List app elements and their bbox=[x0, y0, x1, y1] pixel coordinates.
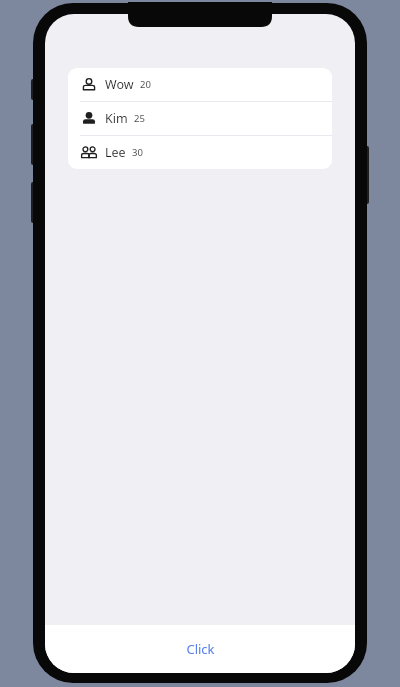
staticText: Wow bbox=[105, 76, 134, 93]
staticText: Kim bbox=[105, 110, 128, 127]
staticText: 25 bbox=[134, 112, 145, 125]
button[interactable]: Wow bbox=[68, 68, 332, 101]
button[interactable]: Click bbox=[45, 625, 355, 673]
staticText: 30 bbox=[132, 146, 143, 159]
staticText: Lee bbox=[105, 144, 126, 161]
staticText: Click bbox=[186, 640, 215, 658]
button[interactable]: Kim bbox=[68, 102, 332, 135]
button[interactable]: Lee bbox=[68, 136, 332, 169]
staticText: 20 bbox=[140, 78, 151, 91]
